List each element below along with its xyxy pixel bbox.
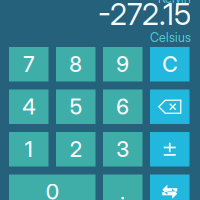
staticText: 3 <box>116 136 129 162</box>
staticText: -272.15 <box>98 0 191 32</box>
button[interactable]: 3 <box>103 132 142 166</box>
staticText: 6 <box>116 94 129 120</box>
staticText: 5 <box>70 94 82 120</box>
button[interactable]: 2 <box>56 132 95 166</box>
staticText: 7 <box>23 51 34 77</box>
staticText: C <box>162 51 177 77</box>
staticText: 4 <box>22 94 35 120</box>
staticText: 1 <box>25 136 33 162</box>
button[interactable]: Plus minus <box>150 132 189 166</box>
staticText: 8 <box>69 51 82 77</box>
button[interactable]: Delete <box>150 89 189 124</box>
button[interactable]: 4 <box>9 89 48 124</box>
staticText: Celsius <box>150 30 191 45</box>
staticText: 0 <box>46 179 59 200</box>
button[interactable]: 0 <box>9 174 95 200</box>
staticText: . <box>120 179 125 200</box>
button[interactable]: 9 <box>103 47 142 81</box>
button[interactable]: 1 <box>9 132 48 166</box>
button[interactable]: Swap units <box>150 174 189 200</box>
staticText: 9 <box>116 51 129 77</box>
button[interactable]: 6 <box>103 89 142 124</box>
staticText: Kelvin <box>158 0 191 6</box>
button[interactable]: 7 <box>9 47 48 81</box>
button[interactable]: 8 <box>56 47 95 81</box>
button[interactable]: . <box>103 174 142 200</box>
button[interactable]: C <box>150 47 189 81</box>
button[interactable]: 5 <box>56 89 95 124</box>
staticText: 2 <box>70 136 82 162</box>
